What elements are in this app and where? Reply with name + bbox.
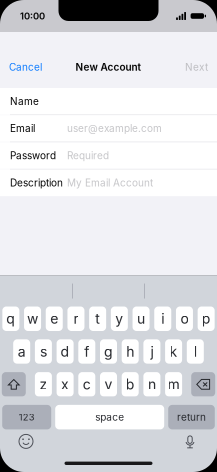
button[interactable]: u	[132, 306, 149, 331]
staticText: z	[39, 376, 47, 393]
button[interactable]: Dictation	[177, 431, 203, 451]
staticText: My Email Account	[67, 177, 153, 189]
staticText: return	[177, 411, 206, 423]
staticText: Description	[10, 177, 63, 189]
staticText: Email	[10, 122, 35, 134]
button[interactable]: r	[67, 306, 84, 331]
staticText: d	[61, 343, 70, 360]
staticText: u	[137, 310, 145, 327]
button[interactable]: p	[198, 306, 215, 331]
button[interactable]: a	[13, 339, 30, 364]
button[interactable]: s	[35, 339, 52, 364]
staticText: i	[161, 310, 164, 327]
staticText: s	[40, 343, 47, 360]
button[interactable]: h	[122, 339, 139, 364]
staticText: 10:00	[20, 10, 45, 22]
button[interactable]: g	[100, 339, 117, 364]
button[interactable]: l	[187, 339, 204, 364]
staticText: b	[126, 376, 135, 393]
staticText: m	[168, 376, 180, 393]
staticText: q	[6, 310, 15, 327]
button[interactable]: Next	[176, 55, 217, 79]
button[interactable]: return	[168, 405, 215, 429]
button[interactable]: j	[143, 339, 160, 364]
staticText: x	[61, 376, 69, 393]
button[interactable]: w	[24, 306, 41, 331]
button[interactable]: Shift	[2, 372, 26, 397]
staticText: f	[84, 343, 89, 360]
staticText: v	[104, 376, 112, 393]
button[interactable]: b	[122, 372, 139, 397]
button[interactable]: m	[165, 372, 182, 397]
button[interactable]: Delete	[191, 372, 215, 397]
staticText: Cancel	[9, 61, 42, 73]
staticText: t	[95, 310, 100, 327]
button[interactable]: f	[78, 339, 95, 364]
button[interactable]: space	[55, 405, 164, 429]
button[interactable]: i	[154, 306, 171, 331]
staticText: k	[170, 343, 178, 360]
button[interactable]: Description	[0, 170, 217, 196]
button[interactable]: Email	[0, 115, 217, 142]
button[interactable]: e	[46, 306, 63, 331]
button[interactable]: n	[143, 372, 160, 397]
staticText: space	[95, 411, 124, 423]
button[interactable]: v	[100, 372, 117, 397]
staticText: 123	[19, 411, 35, 423]
staticText: y	[115, 310, 123, 327]
button[interactable]: c	[78, 372, 95, 397]
button[interactable]: q	[2, 306, 19, 331]
button[interactable]: Emoji	[13, 431, 39, 451]
staticText: p	[202, 310, 211, 327]
button[interactable]: t	[89, 306, 106, 331]
staticText: h	[126, 343, 134, 360]
button[interactable]: d	[57, 339, 74, 364]
staticText: Next	[185, 61, 208, 73]
staticText: Password	[10, 150, 56, 162]
button[interactable]: y	[111, 306, 128, 331]
staticText: n	[148, 376, 156, 393]
staticText: r	[73, 310, 78, 327]
staticText: g	[104, 343, 113, 360]
staticText: o	[180, 310, 188, 327]
button[interactable]: z	[35, 372, 52, 397]
button[interactable]: x	[57, 372, 74, 397]
button[interactable]: o	[176, 306, 193, 331]
staticText: a	[18, 343, 26, 360]
staticText: Required	[67, 150, 109, 162]
staticText: l	[194, 343, 197, 360]
button[interactable]: Cancel	[0, 55, 51, 79]
button[interactable]: k	[165, 339, 182, 364]
staticText: e	[50, 310, 58, 327]
staticText: w	[27, 310, 38, 327]
staticText: user@example.com	[67, 122, 162, 134]
staticText: j	[150, 343, 153, 360]
staticText: Name	[10, 95, 39, 107]
staticText: c	[83, 376, 91, 393]
button[interactable]: 123	[2, 405, 51, 429]
staticText: New Account	[75, 61, 141, 73]
button[interactable]: Password	[0, 142, 217, 169]
button[interactable]: Name	[0, 88, 217, 114]
